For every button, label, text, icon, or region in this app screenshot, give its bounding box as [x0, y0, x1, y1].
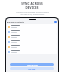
button[interactable]: Toggle backup — [54, 21, 57, 23]
button[interactable] — [7, 29, 57, 34]
button[interactable] — [7, 39, 57, 44]
button[interactable] — [7, 34, 57, 39]
staticText: Turn on sync — [27, 64, 38, 66]
button[interactable]: Not now — [10, 67, 54, 70]
button[interactable]: Turn on sync — [10, 63, 54, 66]
staticText: Not now — [28, 68, 36, 70]
staticText: Backup Contacts — [7, 21, 25, 24]
button[interactable] — [7, 49, 57, 54]
staticText: Contacts stay updated on every device yo… — [16, 11, 49, 15]
button[interactable] — [7, 24, 57, 29]
button[interactable] — [7, 44, 57, 49]
staticText: SYNC ACROSS DEVICES — [21, 2, 43, 10]
